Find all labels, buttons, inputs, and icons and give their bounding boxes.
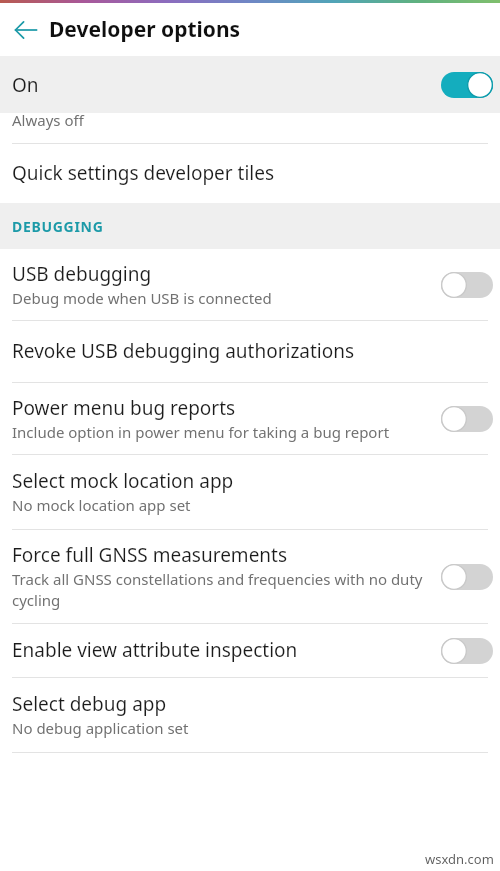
staticText: Enable view attribute inspection (12, 637, 298, 663)
staticText: Select mock location app (12, 468, 234, 494)
button[interactable]: Power menu bug reports (0, 383, 500, 454)
staticText: Power menu bug reports (12, 395, 236, 421)
button[interactable]: Select mock location app (0, 455, 500, 529)
staticText: Developer options (49, 15, 241, 44)
button[interactable]: Enable view attribute inspection (0, 624, 500, 677)
button[interactable]: Toggle off (434, 629, 500, 673)
button[interactable]: Revoke USB debugging authorizations (0, 321, 500, 382)
staticText: On (12, 72, 434, 98)
staticText: Revoke USB debugging authorizations (12, 338, 355, 364)
button[interactable]: USB debugging (0, 249, 500, 320)
staticText: Always off (12, 110, 84, 130)
button[interactable]: Toggle off (434, 397, 500, 441)
staticText: USB debugging (12, 261, 152, 287)
staticText: Track all GNSS constellations and freque… (12, 569, 428, 611)
staticText: wsxdn.com (425, 850, 494, 868)
staticText: No debug application set (12, 718, 189, 738)
staticText: Include option in power menu for taking … (12, 422, 390, 442)
button[interactable]: On (0, 56, 500, 113)
staticText: Select debug app (12, 691, 167, 717)
button[interactable]: Quick settings developer tiles (0, 144, 500, 203)
staticText: No mock location app set (12, 495, 191, 515)
button[interactable]: Always off (0, 113, 500, 143)
staticText: Force full GNSS measurements (12, 542, 288, 568)
button[interactable]: Toggle off (434, 263, 500, 307)
button[interactable]: Toggle on (434, 63, 500, 107)
button[interactable]: Select debug app (0, 678, 500, 752)
staticText: Debug mode when USB is connected (12, 288, 272, 308)
button[interactable]: Force full GNSS measurements (0, 530, 500, 623)
staticText: Quick settings developer tiles (12, 160, 275, 186)
button[interactable]: Back (3, 7, 49, 53)
button[interactable]: Toggle off (434, 555, 500, 599)
staticText: DEBUGGING (12, 217, 104, 236)
